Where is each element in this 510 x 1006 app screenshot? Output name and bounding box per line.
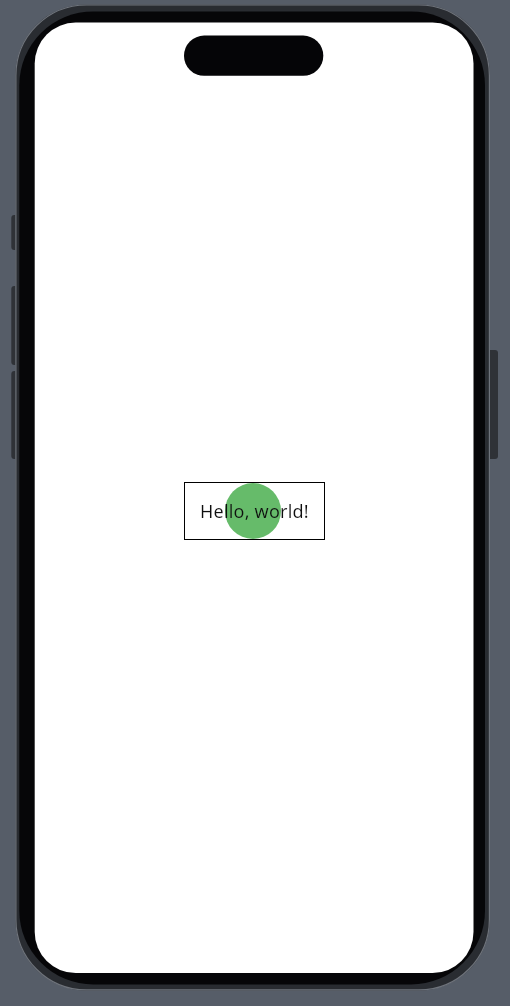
button[interactable]: Hello, world! bbox=[184, 482, 325, 540]
staticText: Hello, world! bbox=[200, 499, 309, 524]
